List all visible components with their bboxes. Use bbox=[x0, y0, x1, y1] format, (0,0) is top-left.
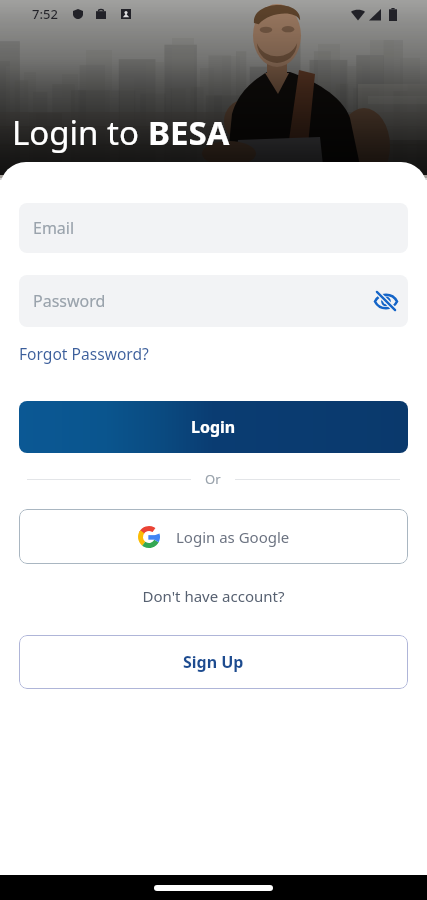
staticText: Login as Google bbox=[176, 527, 290, 547]
button[interactable]: Toggle password visibility bbox=[370, 285, 402, 317]
staticText: Don't have account? bbox=[19, 586, 408, 606]
button[interactable]: Sign Up bbox=[19, 635, 408, 689]
staticText: Or bbox=[205, 470, 221, 488]
staticText: Email bbox=[33, 217, 75, 239]
button[interactable]: Forgot Password? bbox=[19, 343, 149, 364]
staticText: Sign Up bbox=[183, 651, 244, 673]
button[interactable]: Login bbox=[19, 401, 408, 453]
staticText: Password bbox=[33, 290, 106, 312]
button[interactable]: Login as Google bbox=[19, 509, 408, 564]
button[interactable]: Email bbox=[19, 203, 408, 253]
button[interactable]: Password bbox=[19, 275, 408, 327]
staticText: 7:52 bbox=[32, 5, 58, 23]
staticText: Forgot Password? bbox=[19, 343, 149, 364]
staticText: BESA bbox=[148, 110, 230, 155]
staticText: Login to bbox=[12, 110, 148, 155]
staticText: Login bbox=[191, 416, 236, 438]
